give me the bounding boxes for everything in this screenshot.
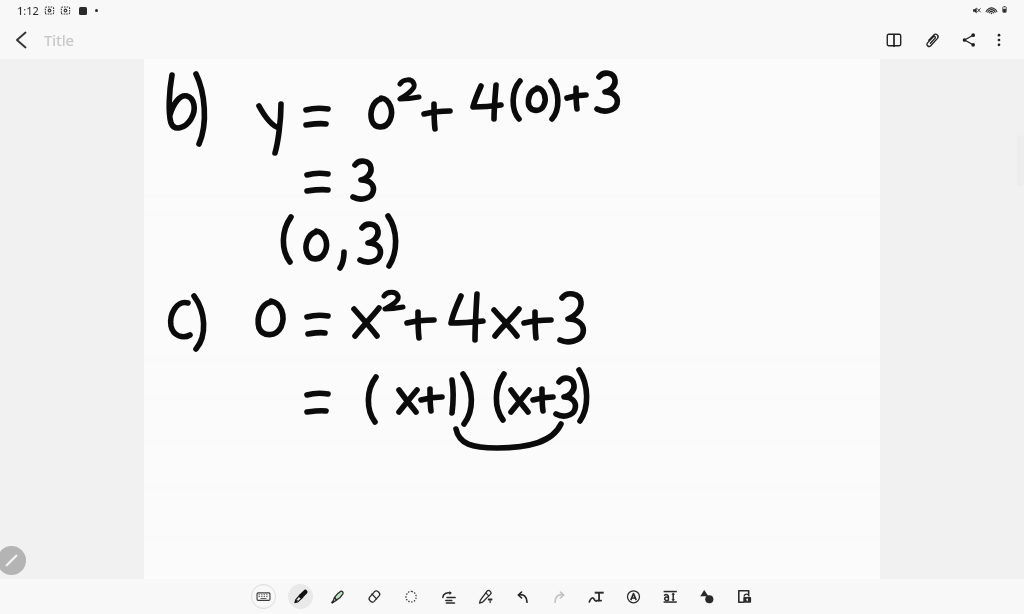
- button[interactable]: View mode: [877, 21, 911, 59]
- staticText: 1:12: [17, 3, 39, 18]
- button[interactable]: Keyboard: [245, 579, 282, 614]
- button[interactable]: Spacing: [652, 579, 689, 614]
- button[interactable]: Text style: [615, 579, 652, 614]
- button[interactable]: Pen: [0, 546, 26, 575]
- button[interactable]: Pen settings: [467, 579, 504, 614]
- button[interactable]: Highlighter: [319, 579, 356, 614]
- button[interactable]: Eraser: [356, 579, 393, 614]
- button[interactable]: Shapes: [689, 579, 726, 614]
- button[interactable]: Align: [430, 579, 467, 614]
- button[interactable]: Back: [0, 21, 44, 59]
- button[interactable]: Lock: [726, 579, 763, 614]
- button[interactable]: Convert to text: [578, 579, 615, 614]
- button[interactable]: Redo: [541, 579, 578, 614]
- button[interactable]: Selection: [393, 579, 430, 614]
- button[interactable]: Attach: [915, 21, 949, 59]
- button[interactable]: More options: [982, 21, 1016, 59]
- button[interactable]: Pen: [282, 579, 319, 614]
- staticText: Title: [44, 30, 74, 50]
- button[interactable]: Share: [952, 21, 986, 59]
- button[interactable]: Undo: [504, 579, 541, 614]
